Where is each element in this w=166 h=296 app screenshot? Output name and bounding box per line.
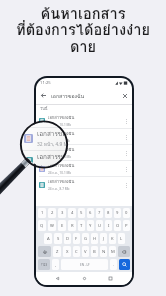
button[interactable]: D <box>64 233 71 244</box>
staticText: 7 <box>98 210 101 216</box>
button[interactable]: Shift <box>38 246 51 257</box>
staticText: เอกสารของฉัน <box>48 146 75 153</box>
button[interactable]: Back <box>53 274 62 283</box>
button[interactable]: Recents <box>106 274 115 283</box>
button[interactable]: P <box>123 220 130 231</box>
staticText: V <box>84 249 87 255</box>
staticText: 3 <box>61 210 64 216</box>
button[interactable]: เอกสารของฉัน <box>36 177 132 192</box>
button[interactable]: More options <box>122 165 130 173</box>
staticText: K <box>111 236 114 242</box>
button[interactable]: เอกสารของฉัน <box>22 150 66 166</box>
button[interactable]: 6 <box>87 208 94 218</box>
button[interactable]: Search <box>119 259 130 270</box>
staticText: เอกสารของฉัน <box>51 92 85 100</box>
staticText: 24 ก.ค., 8.7 Mb <box>48 186 70 191</box>
staticText: 24 ก.ค., 10.1 Mb <box>37 122 66 125</box>
staticText: X <box>66 249 69 255</box>
button[interactable]: Back <box>39 91 48 100</box>
staticText: W <box>50 223 54 229</box>
button[interactable]: 9 <box>114 208 121 218</box>
button[interactable]: . <box>110 259 117 270</box>
button[interactable]: R <box>68 220 76 231</box>
button[interactable]: S <box>54 233 62 244</box>
staticText: 0 <box>125 210 128 216</box>
button[interactable]: U <box>96 220 103 231</box>
button[interactable]: O <box>114 220 121 231</box>
button[interactable]: N <box>100 246 107 257</box>
button[interactable]: C <box>73 246 80 257</box>
staticText: T <box>80 223 83 229</box>
button[interactable]: เอกสารของฉัน <box>36 145 132 160</box>
button[interactable]: เอกสารของฉัน <box>36 161 132 176</box>
staticText: เอกสารของฉัน <box>48 178 75 185</box>
button[interactable]: Z <box>53 246 61 257</box>
button[interactable]: T <box>78 220 85 231</box>
button[interactable]: I <box>105 220 112 231</box>
staticText: วันนี้ <box>40 106 48 112</box>
button[interactable]: 8 <box>105 208 112 218</box>
button[interactable]: 0 <box>123 208 130 218</box>
button[interactable]: EN - LF <box>61 259 108 270</box>
button[interactable]: V <box>82 246 89 257</box>
button[interactable]: B <box>91 246 98 257</box>
staticText: R <box>71 223 74 229</box>
staticText: H <box>93 236 97 242</box>
staticText: ค้นหาเอกสาร ที่ต้องการได้อย่างง่าย ดาย <box>16 2 150 58</box>
button[interactable]: A <box>44 233 52 244</box>
button[interactable]: เอกสารของฉัน <box>36 129 132 144</box>
staticText: G <box>84 236 88 242</box>
staticText: 9 <box>116 210 119 216</box>
button[interactable]: H <box>91 233 98 244</box>
staticText: B <box>93 249 96 255</box>
button[interactable]: เอกสารของฉัน <box>22 127 66 150</box>
button[interactable]: Q <box>38 220 46 231</box>
staticText: Q <box>40 223 44 229</box>
staticText: J <box>103 236 105 242</box>
button[interactable]: G <box>82 233 89 244</box>
staticText: EN - LF <box>80 263 90 267</box>
button[interactable]: Home <box>80 274 89 283</box>
button[interactable]: More options <box>122 181 130 189</box>
button[interactable]: ?123 <box>38 259 50 270</box>
button[interactable]: L <box>118 233 125 244</box>
button[interactable]: More options <box>122 133 130 141</box>
button[interactable]: , <box>52 259 59 270</box>
button[interactable]: 7 <box>96 208 103 218</box>
staticText: Y <box>89 223 92 229</box>
staticText: 32 หน้า, 4.9 Mb <box>37 140 66 148</box>
button[interactable]: 2 <box>48 208 56 218</box>
button[interactable]: 4 <box>68 208 76 218</box>
staticText: 8 <box>107 210 110 216</box>
button[interactable]: J <box>100 233 107 244</box>
staticText: C <box>75 249 78 255</box>
button[interactable]: M <box>109 246 116 257</box>
staticText: Z <box>56 249 59 255</box>
button[interactable]: 3 <box>58 208 66 218</box>
button[interactable]: Clear <box>120 91 129 100</box>
button[interactable]: X <box>63 246 71 257</box>
staticText: 24 ก.ค., 11.3 Mb <box>48 154 72 159</box>
button[interactable]: More options <box>122 149 130 157</box>
staticText: เอกสารของฉัน <box>37 152 66 162</box>
button[interactable]: K <box>109 233 116 244</box>
button[interactable]: W <box>48 220 56 231</box>
staticText: L <box>120 236 123 242</box>
staticText: I <box>108 223 110 229</box>
button[interactable]: เอกสารของฉัน <box>36 113 132 128</box>
staticText: 1 <box>41 210 44 216</box>
button[interactable]: E <box>58 220 66 231</box>
staticText: 24 ก.ค., 10.1 Mb <box>48 170 72 175</box>
button[interactable]: Y <box>87 220 94 231</box>
button[interactable]: F <box>73 233 80 244</box>
button[interactable]: 5 <box>78 208 85 218</box>
button[interactable]: เอกสารของฉัน <box>22 122 66 127</box>
button[interactable]: Backspace <box>118 246 130 257</box>
staticText: P <box>125 223 128 229</box>
staticText: 24 ก.ค., 11.3 Mb <box>37 163 66 166</box>
staticText: เอกสารของฉัน <box>48 114 75 121</box>
button[interactable]: More options <box>122 117 130 125</box>
staticText: เอกสารของฉัน <box>48 130 75 137</box>
staticText: O <box>116 223 120 229</box>
button[interactable]: 1 <box>38 208 46 218</box>
